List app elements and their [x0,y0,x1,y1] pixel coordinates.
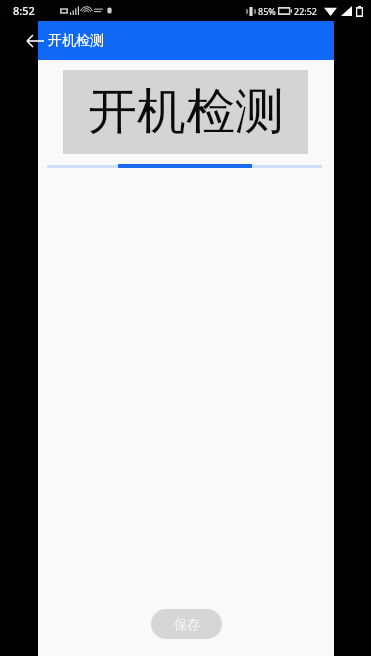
staticText: 保存 [174,616,200,632]
staticText: 8:52 [13,3,35,18]
staticText: 开机检测 [48,32,104,50]
staticText: 85% [258,5,276,17]
button[interactable]: 保存 [151,609,222,639]
button[interactable]: Back [24,29,50,53]
staticText: 22:52 [294,5,318,17]
staticText: 开机检测 [88,81,284,143]
